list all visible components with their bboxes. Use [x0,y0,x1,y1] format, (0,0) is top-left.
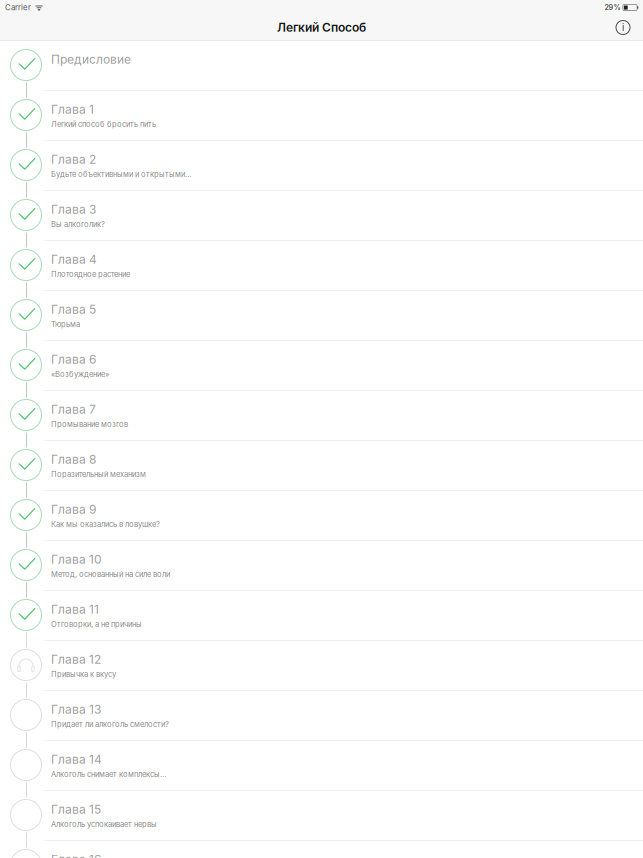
staticText: Как мы оказались в ловушке? [51,520,160,529]
button[interactable]: Информация [610,15,636,40]
staticText: Глава 6 [51,352,96,366]
staticText: Алкоголь снимает комплексы… [51,770,167,779]
button[interactable]: Глава 6 [0,340,643,390]
staticText: Глава 1 [51,102,94,116]
staticText: Вы алкоголик? [51,220,105,229]
button[interactable]: Глава 12 [0,640,643,690]
staticText: Плотоядное растение [51,270,130,279]
staticText: Глава 3 [51,202,96,216]
staticText: Тюрьма [51,320,80,329]
staticText: Глава 7 [51,402,96,416]
button[interactable]: Глава 10 [0,540,643,590]
staticText: Глава 9 [51,502,96,516]
staticText: Глава 16 [51,852,101,858]
staticText: Будьте объективными и открытыми… [51,170,192,179]
button[interactable]: Глава 7 [0,390,643,440]
staticText: Глава 15 [51,802,101,816]
staticText: Глава 12 [51,652,101,666]
button[interactable]: Глава 13 [0,690,643,740]
staticText: Придает ли алкоголь смелости? [51,720,169,729]
staticText: Глава 8 [51,452,96,466]
button[interactable]: Глава 8 [0,440,643,490]
staticText: Алкоголь успокаивает нервы [51,820,157,829]
staticText: Предисловие [51,52,131,66]
button[interactable]: Глава 4 [0,240,643,290]
staticText: «Возбуждение» [51,370,109,379]
staticText: i [622,22,624,33]
staticText: Глава 2 [51,152,96,166]
button[interactable]: Глава 3 [0,190,643,240]
button[interactable]: Глава 14 [0,740,643,790]
staticText: Глава 11 [51,602,99,616]
button[interactable]: Глава 1 [0,90,643,140]
staticText: Глава 13 [51,702,101,716]
staticText: Глава 4 [51,252,97,266]
staticText: Отговорки, а не причины [51,620,142,629]
staticText: Глава 10 [51,552,102,566]
staticText: Глава 14 [51,752,102,766]
button[interactable]: Глава 11 [0,590,643,640]
staticText: Привычка к вкусу [51,670,116,679]
button[interactable]: Предисловие [0,40,643,90]
staticText: Легкий способ бросить пить [51,120,156,129]
button[interactable]: Глава 15 [0,790,643,840]
staticText: 29% [604,3,620,12]
staticText: Поразительный механизм [51,470,146,479]
staticText: Глава 5 [51,302,96,316]
button[interactable]: Глава 2 [0,140,643,190]
staticText: Промывание мозгов [51,420,128,429]
button[interactable]: Глава 5 [0,290,643,340]
staticText: Метод, основанный на силе воли [51,570,170,579]
button[interactable]: Глава 16 [0,840,643,858]
staticText: Carrier [5,3,31,12]
button[interactable]: Глава 9 [0,490,643,540]
staticText: Легкий Способ [277,20,366,35]
